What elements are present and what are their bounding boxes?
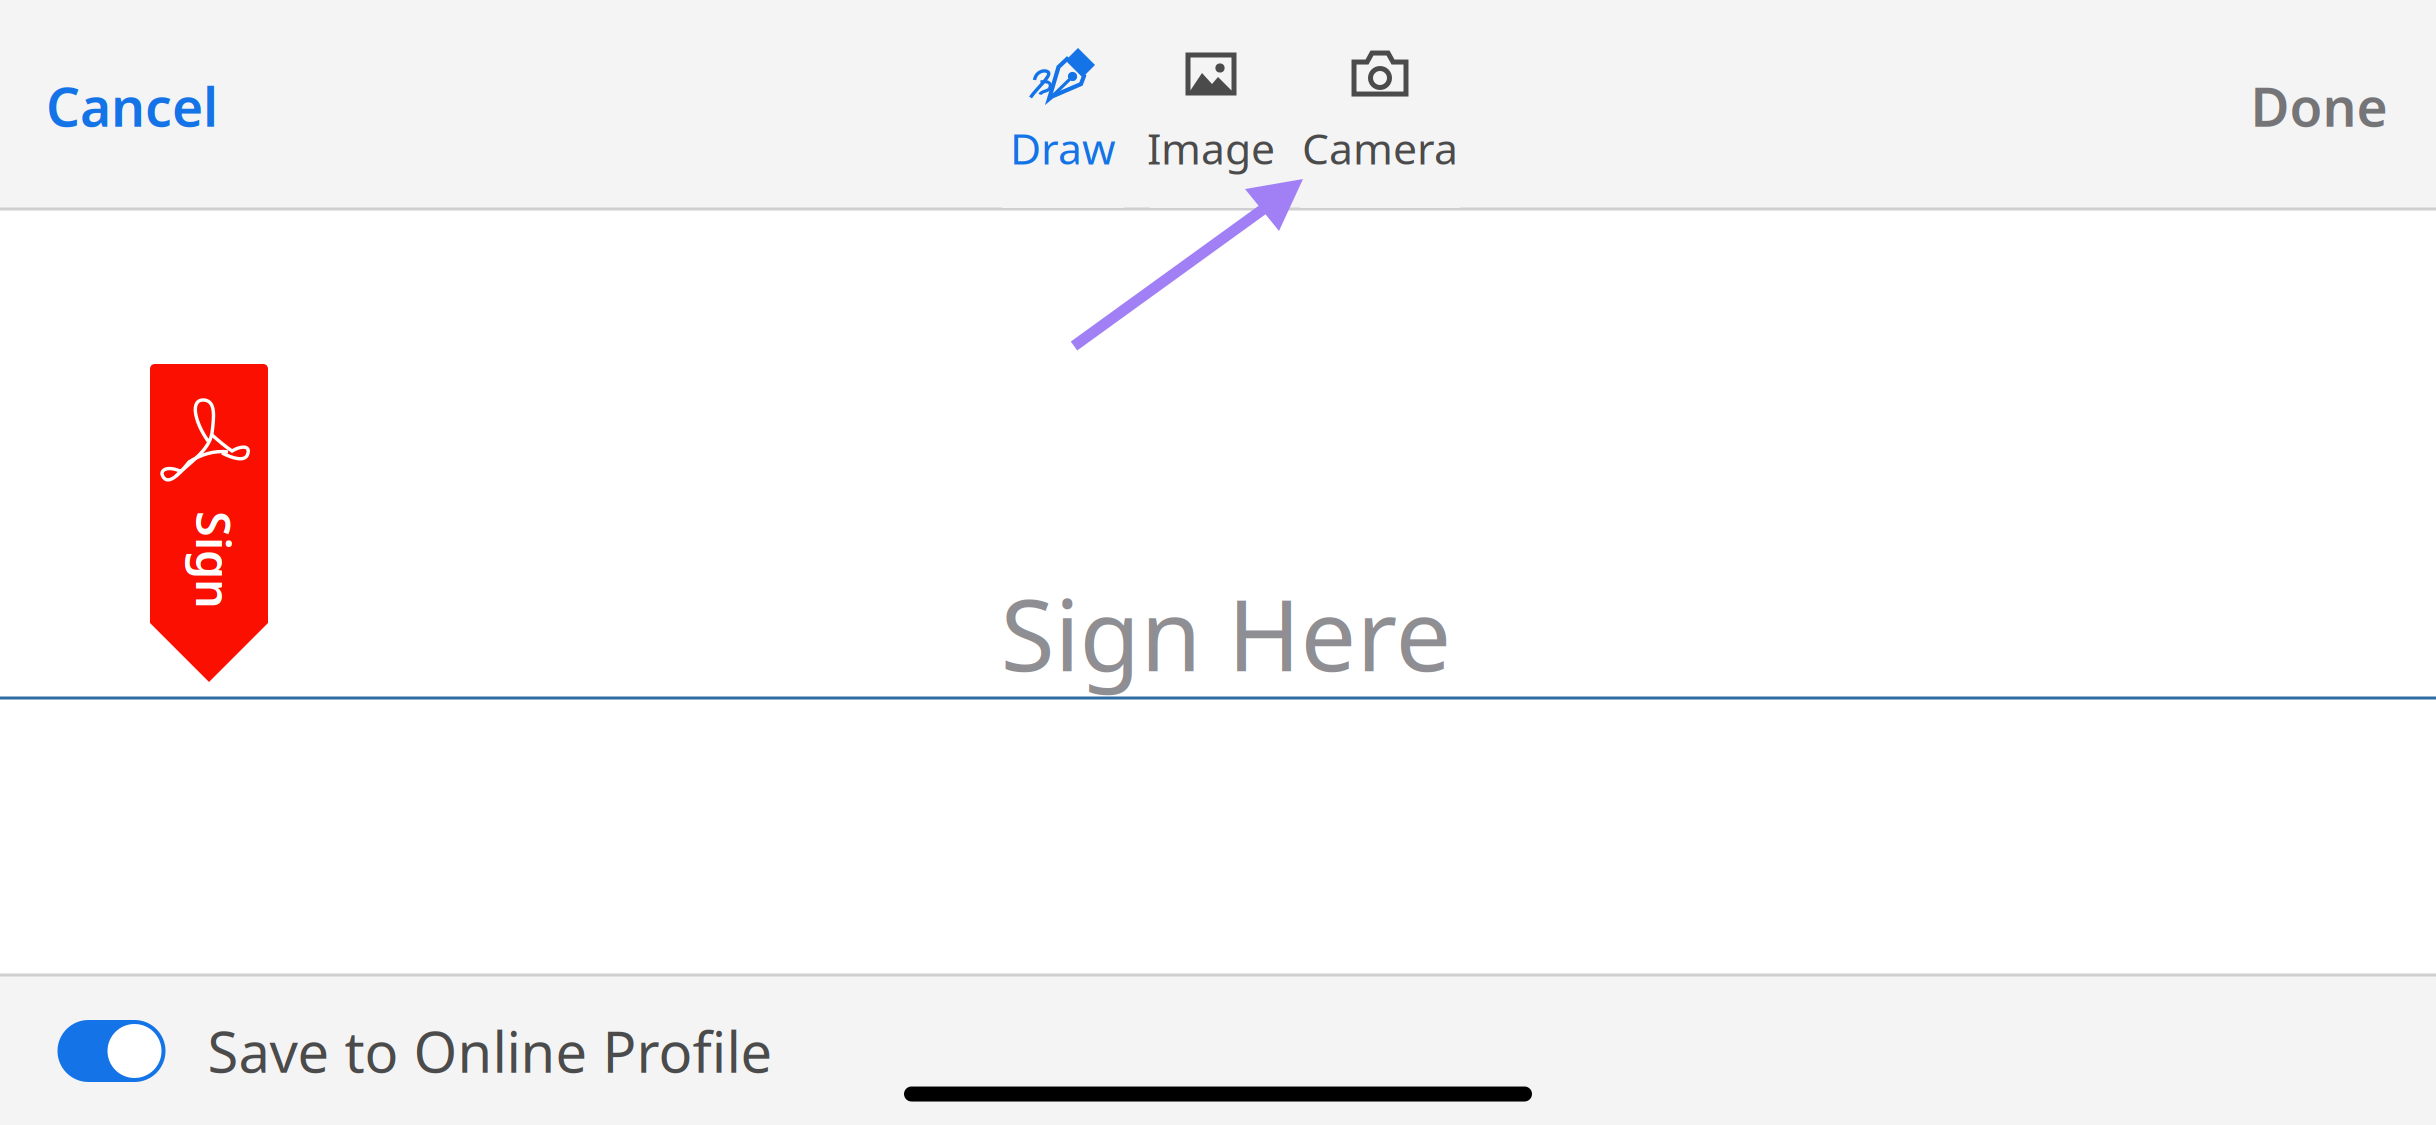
button[interactable]: Draw: [1002, 0, 1124, 208]
staticText: Cancel: [46, 71, 218, 141]
button[interactable]: Save to Online Profile: [0, 978, 780, 1124]
staticText: Sign Here: [1000, 567, 1451, 698]
staticText: Image: [1147, 120, 1275, 176]
button[interactable]: Sign: [150, 364, 268, 682]
staticText: Sign: [165, 529, 263, 591]
button[interactable]: Image: [1150, 0, 1272, 208]
staticText: Camera: [1302, 120, 1458, 176]
button[interactable]: Camera: [1300, 0, 1460, 208]
button[interactable]: Done: [2209, 2, 2429, 210]
button[interactable]: Cancel: [17, 2, 247, 210]
staticText: Save to Online Profile: [207, 1014, 772, 1088]
staticText: Done: [2250, 71, 2387, 141]
staticText: Draw: [1010, 120, 1116, 176]
